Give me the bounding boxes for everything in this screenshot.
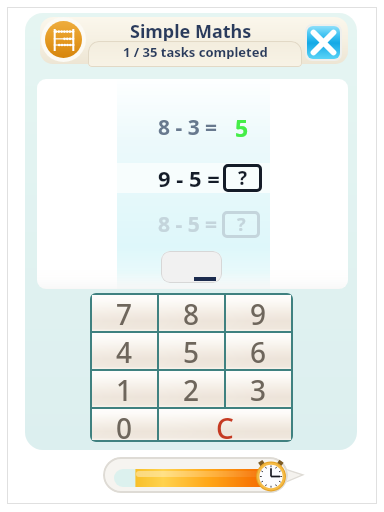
staticText: 1 <box>116 371 133 407</box>
staticText: 1 / 35 tasks completed <box>123 43 268 59</box>
button[interactable]: 4 <box>92 333 157 369</box>
staticText: 9 - 5 = <box>158 163 220 193</box>
staticText: 6 <box>250 333 267 369</box>
button[interactable]: 5 <box>159 333 224 369</box>
button[interactable]: Timer <box>103 457 288 493</box>
button[interactable]: 9 <box>226 295 291 331</box>
button[interactable]: 3 <box>226 371 291 407</box>
button[interactable]: 8 <box>159 295 224 331</box>
button[interactable]: 7 <box>92 295 157 331</box>
button[interactable]: 0 <box>92 409 157 440</box>
staticText: 4 <box>116 333 133 369</box>
staticText: 2 <box>183 371 200 407</box>
staticText: 0 <box>116 409 133 440</box>
staticText: 5 <box>183 333 200 369</box>
staticText: ? <box>238 165 248 191</box>
button[interactable]: Time remaining <box>254 458 288 492</box>
staticText: 8 - 3 = <box>158 113 218 142</box>
staticText: Simple Maths <box>130 19 252 41</box>
staticText: 7 <box>116 295 133 331</box>
button[interactable]: Abacus <box>41 17 86 62</box>
staticText: ? <box>237 212 246 237</box>
staticText: C <box>216 409 234 440</box>
staticText: 5 <box>235 112 249 142</box>
button[interactable]: Answer input <box>161 251 222 283</box>
staticText: 8 <box>183 295 200 331</box>
button[interactable]: Close <box>307 26 340 59</box>
button[interactable]: 6 <box>226 333 291 369</box>
staticText: 9 <box>250 295 267 331</box>
button[interactable]: 1 <box>92 371 157 407</box>
button[interactable]: 2 <box>159 371 224 407</box>
staticText: 3 <box>250 371 267 407</box>
staticText: 8 - 5 = <box>158 210 218 239</box>
button[interactable]: C <box>159 409 291 440</box>
